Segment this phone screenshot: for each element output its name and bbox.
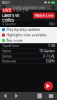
staticText: Box score xyxy=(6,39,22,42)
staticText: 9:41 xyxy=(2,0,10,5)
staticText: Series xyxy=(2,54,12,58)
button[interactable]: Forward xyxy=(11,92,23,100)
staticText: Arena xyxy=(2,49,11,53)
button[interactable]: Back xyxy=(0,92,11,100)
staticText: 7:30 xyxy=(48,44,55,48)
staticText: Network xyxy=(2,59,16,63)
button[interactable]: Box score xyxy=(0,38,57,43)
button[interactable]: Network xyxy=(0,59,57,64)
staticText: Highlights now available xyxy=(6,33,46,37)
staticText: TD Garden xyxy=(39,49,55,53)
staticText: Watch Live xyxy=(35,13,53,18)
button[interactable]: Arena xyxy=(0,48,57,54)
staticText: Q4 2:14 xyxy=(16,8,28,12)
button[interactable]: Play xyxy=(44,81,53,90)
staticText: Tipoff time xyxy=(2,44,19,48)
staticText: 2-1 LAL xyxy=(43,54,55,58)
button[interactable]: Tipoff time xyxy=(0,43,57,48)
staticText: ESPN xyxy=(46,59,55,63)
button[interactable]: More xyxy=(51,5,56,10)
button[interactable]: Tabs xyxy=(46,92,57,100)
button[interactable]: Close xyxy=(1,5,6,10)
staticText: sports.example.com xyxy=(12,6,45,9)
staticText: NBA xyxy=(49,22,55,26)
staticText: Play-by-play updates xyxy=(6,28,40,32)
button[interactable]: Highlights now available xyxy=(0,32,57,38)
button[interactable]: Bookmarks xyxy=(34,92,46,100)
staticText: Lakers vs Celtics xyxy=(2,13,19,23)
staticText: LIVE xyxy=(3,8,11,12)
button[interactable]: Watch Live xyxy=(33,12,55,18)
button[interactable]: Play-by-play updates xyxy=(0,27,57,32)
staticText: 4 Quarter xyxy=(2,22,16,26)
button[interactable]: Series xyxy=(0,54,57,59)
